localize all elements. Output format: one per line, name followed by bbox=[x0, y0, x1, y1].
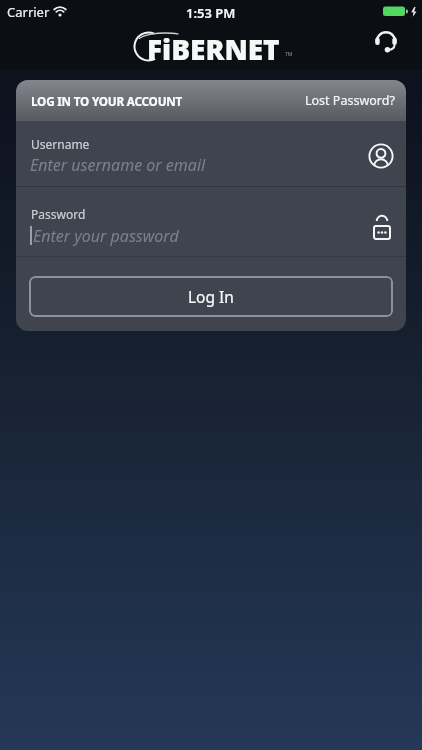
staticText: Enter your password bbox=[33, 225, 179, 247]
button[interactable]: Username bbox=[16, 121, 406, 186]
button[interactable]: Password bbox=[16, 187, 406, 256]
button[interactable]: Lost Password? bbox=[305, 92, 406, 109]
staticText: FiBERNET bbox=[147, 30, 280, 68]
staticText: Password bbox=[31, 206, 86, 222]
button[interactable]: Log In bbox=[29, 276, 393, 317]
staticText: TM bbox=[285, 51, 293, 58]
staticText: LOG IN TO YOUR ACCOUNT bbox=[31, 93, 183, 109]
staticText: Username bbox=[31, 136, 90, 152]
staticText: Log In bbox=[188, 286, 234, 307]
staticText: Enter username or email bbox=[30, 154, 206, 176]
staticText: 1:53 PM bbox=[186, 4, 236, 22]
button[interactable] bbox=[366, 24, 402, 60]
staticText: Lost Password? bbox=[305, 92, 395, 109]
staticText: Carrier bbox=[7, 3, 50, 21]
